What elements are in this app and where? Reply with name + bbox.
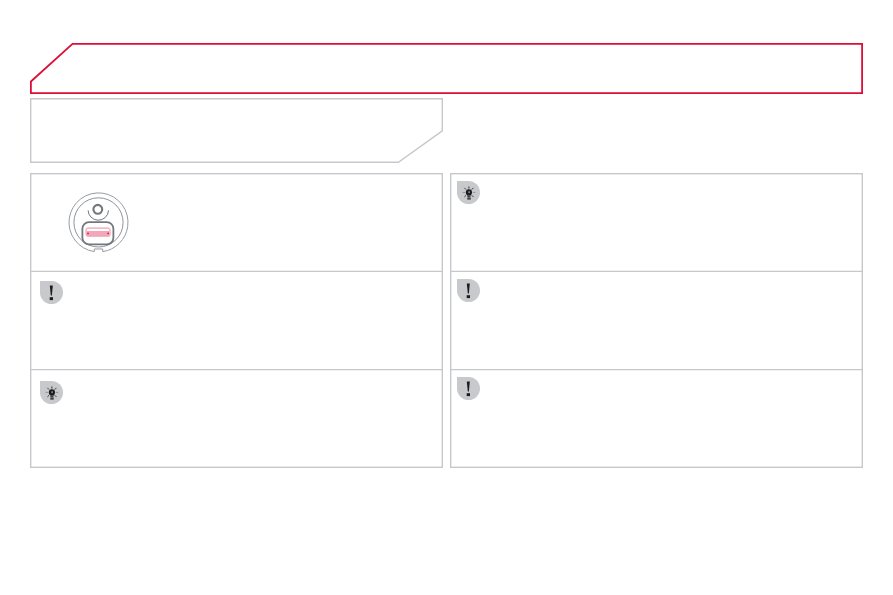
button[interactable]: Tip [450,173,863,271]
button[interactable]: Tip [30,369,443,467]
other: Tip [40,381,63,404]
other: Alert [457,377,480,400]
other: Appliance [68,193,128,253]
button[interactable]: Alert [450,369,863,467]
button[interactable]: Appliance [30,173,443,271]
button[interactable]: Alert banner [30,43,863,94]
other: Alert [40,281,63,304]
button[interactable]: Alert [30,271,443,369]
button[interactable]: Summary card [30,98,443,163]
button[interactable]: Alert [450,271,863,369]
other: Tip [457,181,480,204]
other: Alert [457,279,480,302]
